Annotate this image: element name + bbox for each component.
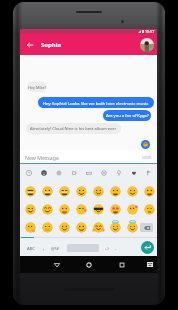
button[interactable]: Emoji category — [83, 167, 94, 178]
button[interactable]: Emoji — [58, 221, 71, 233]
button[interactable]: Hey Mike! — [27, 82, 47, 92]
staticText: . — [115, 245, 117, 251]
button[interactable]: Reaction — [141, 140, 150, 149]
staticText: Are you a fan of Kygo? — [106, 113, 149, 119]
button[interactable]: Emoji — [75, 221, 88, 233]
button[interactable]: Emoji — [24, 203, 37, 215]
button[interactable]: Emoji — [126, 221, 139, 233]
button[interactable]: Emoji — [109, 221, 122, 233]
button[interactable]: Emoji — [75, 185, 88, 197]
button[interactable]: Send — [141, 241, 154, 254]
button[interactable]: , — [39, 241, 48, 255]
button[interactable]: Emoji — [126, 203, 139, 215]
button[interactable]: Emoji — [126, 185, 139, 197]
staticText: @?# — [51, 246, 59, 251]
button[interactable]: Emoji — [58, 185, 71, 197]
button[interactable]: Back — [51, 256, 62, 273]
button[interactable]: Emoji — [58, 203, 71, 215]
button[interactable]: Emoji — [92, 185, 105, 197]
button[interactable]: Emoji — [143, 185, 156, 197]
button[interactable]: . — [112, 241, 120, 255]
button[interactable]: Emoji category — [68, 167, 79, 178]
staticText: SEND — [142, 155, 152, 160]
staticText: Sophia — [41, 41, 62, 49]
button[interactable]: Emoji category — [113, 167, 124, 178]
button[interactable]: Emoji category — [98, 167, 109, 178]
button[interactable]: Recent apps — [116, 256, 127, 273]
button[interactable]: Absolutely! Cloud Nine is his best album… — [26, 123, 121, 134]
button[interactable]: :-) — [102, 241, 112, 255]
button[interactable]: Emoji — [24, 185, 37, 197]
staticText: ABC — [27, 246, 35, 251]
button[interactable]: Emoji — [24, 221, 37, 233]
button[interactable]: ABC — [23, 241, 39, 255]
button[interactable]: Emoji — [92, 221, 105, 233]
button[interactable]: Emoji — [41, 221, 54, 233]
button[interactable]: Emoji — [92, 203, 105, 215]
button[interactable]: Contact profile — [140, 38, 154, 52]
button[interactable]: Hey Sophia! Looks like we both love elec… — [38, 97, 154, 108]
button[interactable]: Backspace — [140, 223, 153, 232]
button[interactable]: Emoji — [109, 185, 122, 197]
button[interactable]: Are you a fan of Kygo? — [103, 110, 151, 121]
button[interactable]: Emoji — [143, 203, 156, 215]
button[interactable]: Emoji — [41, 185, 54, 197]
button[interactable]: Emoji category — [128, 167, 139, 178]
button[interactable]: Home — [83, 256, 94, 273]
button[interactable]: @?# — [48, 241, 62, 255]
staticText: 10:57 — [145, 29, 155, 34]
staticText: Hey Mike! — [28, 85, 46, 90]
button[interactable]: Emoji category — [38, 167, 49, 178]
staticText: New Message — [25, 154, 59, 161]
button[interactable]: Emoji — [41, 203, 54, 215]
button[interactable]: Emoji category — [23, 167, 34, 178]
button[interactable]: Emoji category — [53, 167, 64, 178]
button[interactable]: Hide keyboard — [144, 256, 155, 273]
staticText: Absolutely! Cloud Nine is his best album… — [30, 126, 117, 132]
button[interactable]: Emoji category — [143, 167, 154, 178]
staticText: Hey Sophia! Looks like we both love elec… — [43, 100, 149, 106]
button[interactable]: Emoji — [75, 203, 88, 215]
button[interactable]: Emoji — [109, 203, 122, 215]
button[interactable]: Back — [23, 38, 37, 52]
staticText: :-) — [105, 246, 109, 251]
staticText: , — [43, 245, 45, 251]
